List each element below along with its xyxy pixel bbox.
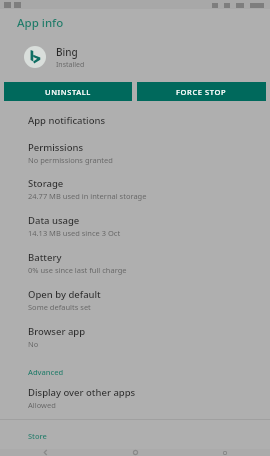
staticText: No permissions granted xyxy=(28,155,113,165)
staticText: FORCE STOP xyxy=(176,87,227,97)
staticText: Storage xyxy=(28,177,64,190)
staticText: App info xyxy=(17,15,64,31)
staticText: 14.13 MB used since 3 Oct xyxy=(28,228,121,238)
staticText: Allowed xyxy=(28,400,56,410)
button[interactable]: Battery xyxy=(0,238,270,275)
staticText: UNINSTALL xyxy=(45,87,91,97)
staticText: Display over other apps xyxy=(28,386,136,399)
staticText: Data usage xyxy=(28,214,80,227)
staticText: App details xyxy=(33,450,84,456)
button[interactable]: FORCE STOP xyxy=(137,82,266,101)
staticText: App notifications xyxy=(28,114,106,127)
staticText: 0% use since last full charge xyxy=(28,265,127,275)
button[interactable]: Recent apps xyxy=(180,449,270,456)
button[interactable]: Browser app xyxy=(0,312,270,349)
staticText: Browser app xyxy=(28,325,86,338)
staticText: 24.77 MB used in internal storage xyxy=(28,191,147,201)
button[interactable]: Display over other apps xyxy=(0,377,270,410)
staticText: Store xyxy=(28,431,47,441)
staticText: Open by default xyxy=(28,288,101,301)
button[interactable]: App details xyxy=(9,450,246,456)
button[interactable]: Open by default xyxy=(0,275,270,312)
button[interactable]: Home xyxy=(90,449,180,456)
button[interactable]: UNINSTALL xyxy=(4,82,132,101)
button[interactable]: App notifications xyxy=(0,101,270,127)
staticText: Advanced xyxy=(28,367,64,377)
staticText: Bing xyxy=(56,45,78,59)
staticText: Installed xyxy=(56,60,85,70)
staticText: Permissions xyxy=(28,141,84,154)
button[interactable]: Storage xyxy=(0,165,270,201)
button[interactable]: Back xyxy=(0,449,90,456)
button[interactable]: Permissions xyxy=(0,127,270,165)
staticText: Some defaults set xyxy=(28,302,91,312)
button[interactable]: Data usage xyxy=(0,201,270,238)
staticText: No xyxy=(28,339,39,349)
staticText: Battery xyxy=(28,251,62,264)
